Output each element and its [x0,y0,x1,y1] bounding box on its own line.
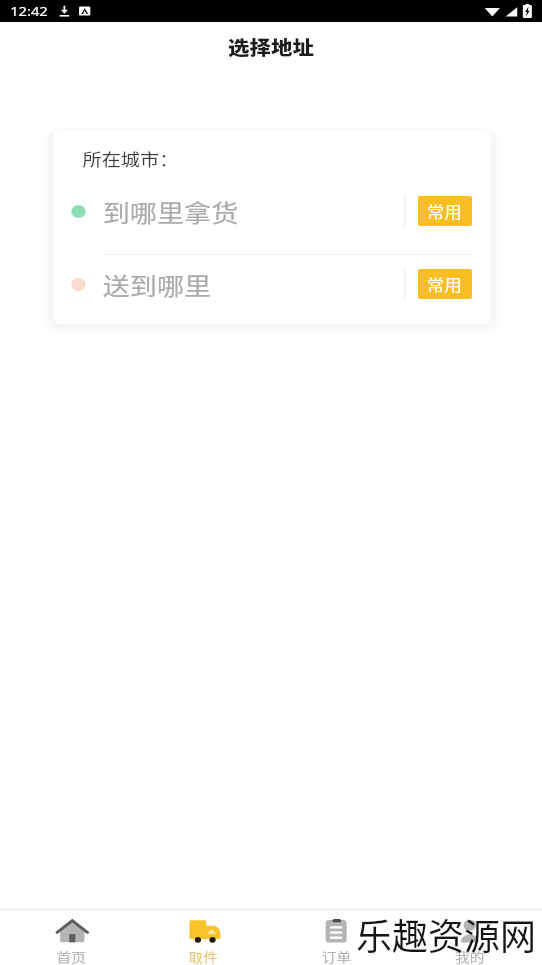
staticText: 常用 [427,200,463,222]
staticText: 选择地址 [228,33,315,61]
other: Profile [453,919,487,943]
staticText: 订单 [322,947,352,965]
staticText: 12:42 [10,2,49,20]
staticText: 取件 [189,947,219,965]
other: Home [55,919,89,943]
other: Pickup [187,919,221,943]
staticText: 乐趣资源网 [356,908,537,960]
staticText: 送到哪里 [103,267,211,302]
staticText: 所在城市： [82,146,178,171]
staticText: 我的 [455,947,486,965]
other: Orders [320,919,353,943]
button[interactable]: 常用 [418,196,472,226]
staticText: 首页 [56,947,87,965]
button[interactable]: Home [6,910,138,965]
button[interactable]: 到哪里拿货 [53,182,491,240]
button[interactable]: 送到哪里 [53,255,491,313]
staticText: 常用 [427,273,463,295]
staticText: 到哪里拿货 [103,194,238,229]
button[interactable]: Pickup [138,910,270,965]
button[interactable]: Orders [270,910,403,965]
button[interactable]: 常用 [418,269,472,299]
button[interactable]: Profile [403,910,536,965]
